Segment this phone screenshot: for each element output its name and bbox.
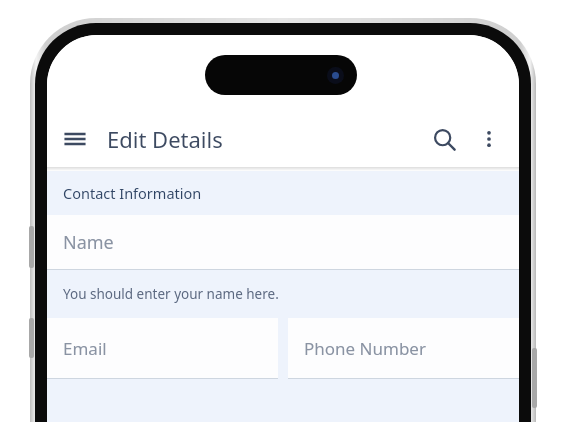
button[interactable]: More options bbox=[467, 117, 511, 161]
button[interactable]: Email bbox=[47, 318, 278, 378]
staticText: Contact Information bbox=[63, 183, 202, 203]
button[interactable]: Open navigation menu bbox=[53, 117, 97, 161]
staticText: Email bbox=[63, 337, 107, 360]
button[interactable]: Phone Number bbox=[288, 318, 519, 378]
staticText: Edit Details bbox=[107, 124, 223, 154]
button[interactable]: Name bbox=[47, 215, 519, 269]
button[interactable]: Search bbox=[421, 116, 467, 162]
staticText: Phone Number bbox=[304, 337, 426, 360]
staticText: Name bbox=[63, 230, 114, 255]
staticText: You should enter your name here. bbox=[63, 285, 279, 303]
